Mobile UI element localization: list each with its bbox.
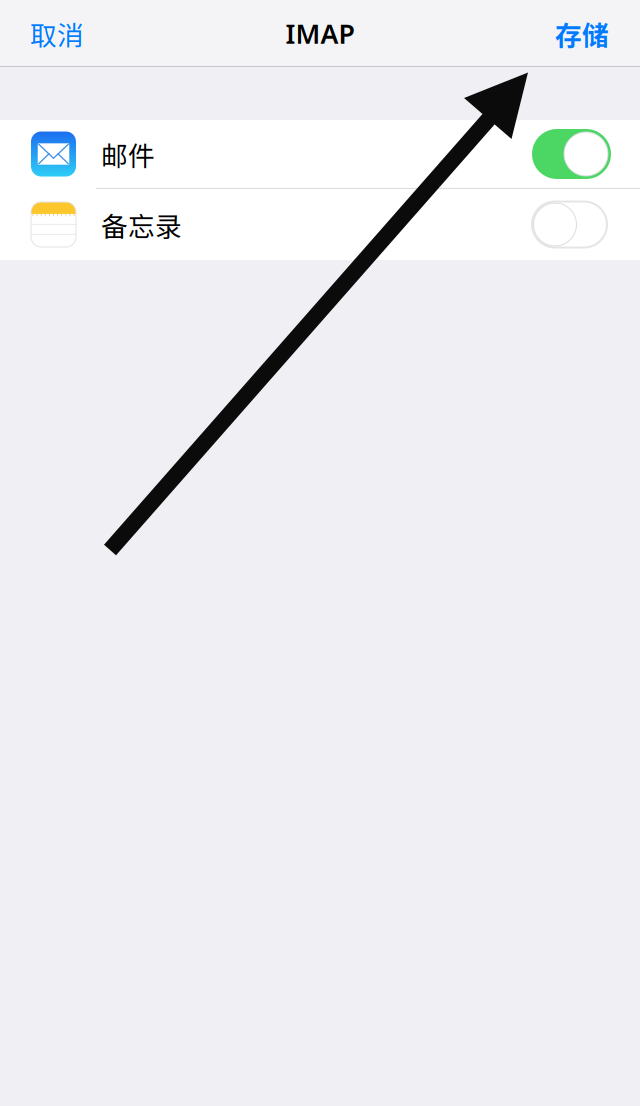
- staticText: 存储: [555, 14, 609, 53]
- button[interactable]: 备忘录: [0, 189, 640, 260]
- staticText: IMAP: [285, 16, 354, 51]
- button[interactable]: 邮件: [0, 120, 640, 188]
- staticText: 邮件: [101, 135, 155, 173]
- button[interactable]: 取消: [0, 0, 114, 67]
- staticText: 取消: [30, 14, 84, 53]
- staticText: 备忘录: [101, 205, 182, 244]
- button[interactable]: 存储: [524, 0, 640, 67]
